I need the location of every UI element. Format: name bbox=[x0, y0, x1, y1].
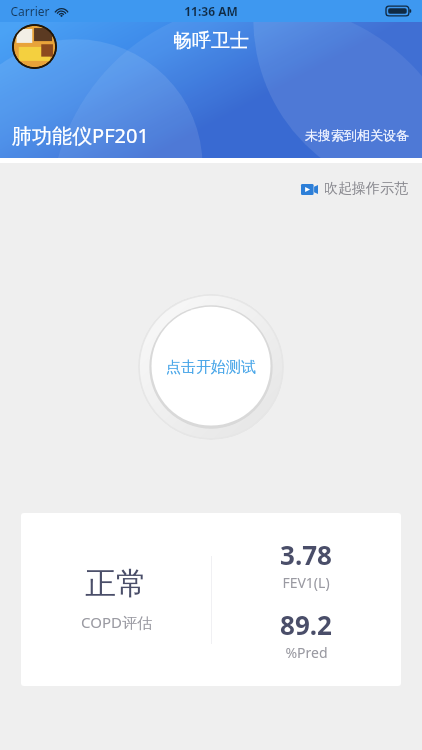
staticText: 点击开始测试 bbox=[166, 358, 256, 377]
staticText: 3.78 bbox=[280, 537, 332, 572]
staticText: COPD评估 bbox=[81, 612, 152, 632]
staticText: 畅呼卫士 bbox=[173, 29, 249, 53]
button[interactable]: 吹起操作示范 bbox=[297, 177, 412, 201]
staticText: 11:36 AM bbox=[184, 3, 238, 19]
staticText: 吹起操作示范 bbox=[324, 180, 408, 198]
button[interactable]: 肺功能仪PF201 bbox=[0, 112, 422, 158]
button[interactable]: 点击开始测试 bbox=[138, 294, 284, 440]
button[interactable]: Profile bbox=[12, 24, 57, 69]
staticText: 肺功能仪PF201 bbox=[12, 122, 149, 149]
staticText: 89.2 bbox=[280, 607, 332, 642]
staticText: %Pred bbox=[285, 643, 328, 662]
staticText: FEV1(L) bbox=[282, 573, 330, 592]
staticText: 未搜索到相关设备 bbox=[305, 127, 409, 143]
button[interactable]: 正常 bbox=[21, 513, 401, 686]
staticText: Carrier bbox=[10, 3, 50, 19]
staticText: 正常 bbox=[85, 564, 147, 603]
